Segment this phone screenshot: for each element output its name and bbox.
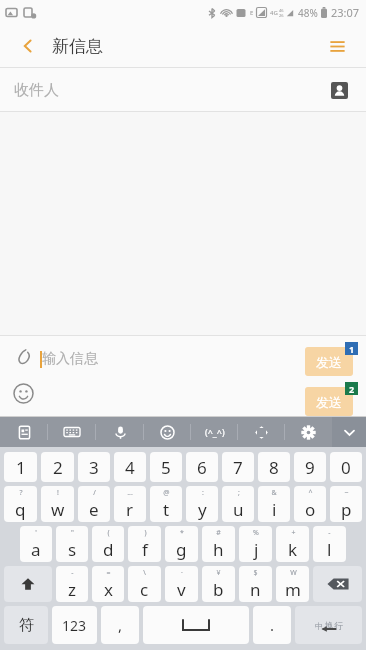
button[interactable]: 发送: [305, 387, 353, 416]
button[interactable]: Voice input: [96, 417, 144, 447]
staticText: ~: [344, 488, 349, 498]
staticText: y: [198, 498, 207, 521]
button[interactable]: *: [165, 526, 198, 562]
button[interactable]: Add contact: [326, 77, 352, 103]
button[interactable]: /: [78, 486, 110, 522]
staticText: m: [285, 578, 301, 601]
button[interactable]: @: [150, 486, 182, 522]
staticText: 6: [197, 456, 207, 479]
staticText: o: [305, 498, 316, 521]
button[interactable]: ~: [330, 486, 362, 522]
button[interactable]: 3: [78, 452, 110, 482]
button[interactable]: Backspace: [313, 566, 362, 602]
button[interactable]: Emoji: [8, 378, 38, 408]
button[interactable]: ?: [4, 486, 37, 522]
button[interactable]: 发送: [305, 347, 353, 376]
staticText: +: [291, 528, 296, 538]
staticText: h: [213, 538, 224, 561]
staticText: q: [15, 498, 26, 521]
button[interactable]: Emoticons: [191, 417, 238, 447]
staticText: (^_^): [205, 426, 225, 438]
button[interactable]: Enter: [295, 606, 362, 644]
staticText: w: [51, 498, 65, 521]
button[interactable]: Attach: [8, 342, 38, 372]
staticText: 发送: [316, 394, 342, 410]
staticText: c: [140, 578, 149, 601]
staticText: 23:07: [331, 5, 360, 20]
button[interactable]: Shift: [4, 566, 52, 602]
button[interactable]: =: [92, 566, 124, 602]
button[interactable]: .: [253, 606, 291, 644]
button[interactable]: 4: [114, 452, 146, 482]
button[interactable]: Emoji: [144, 417, 191, 447]
button[interactable]: 8: [258, 452, 290, 482]
button[interactable]: ": [56, 526, 88, 562]
staticText: 1: [349, 343, 355, 355]
button[interactable]: ;: [222, 486, 254, 522]
button[interactable]: Space: [143, 606, 249, 644]
staticText: ;: [238, 488, 240, 498]
button[interactable]: 123: [52, 606, 97, 644]
button[interactable]: ): [128, 526, 161, 562]
button[interactable]: ¥: [202, 566, 235, 602]
button[interactable]: +: [276, 526, 309, 562]
button[interactable]: \: [128, 566, 161, 602]
staticText: (: [107, 528, 110, 538]
staticText: p: [341, 498, 352, 521]
staticText: 新信息: [52, 36, 103, 57]
staticText: ...: [127, 488, 133, 498]
staticText: l: [327, 538, 332, 561]
button[interactable]: Hide keyboard: [332, 417, 366, 447]
button[interactable]: (: [92, 526, 124, 562]
staticText: 0: [341, 456, 351, 479]
button[interactable]: ': [20, 526, 52, 562]
button[interactable]: -: [313, 526, 346, 562]
button[interactable]: :: [186, 486, 218, 522]
staticText: %: [253, 528, 259, 538]
staticText: 2: [53, 456, 63, 479]
button[interactable]: ^: [294, 486, 326, 522]
button[interactable]: 5: [150, 452, 182, 482]
button[interactable]: ,: [101, 606, 139, 644]
staticText: d: [103, 538, 114, 561]
staticText: =: [106, 568, 111, 578]
staticText: 9: [305, 456, 315, 479]
button[interactable]: ·: [165, 566, 198, 602]
button[interactable]: Keyboard: [48, 417, 96, 447]
button[interactable]: &: [258, 486, 290, 522]
button[interactable]: Settings: [285, 417, 332, 447]
staticText: 4: [125, 456, 135, 479]
staticText: 4G: [270, 9, 278, 17]
button[interactable]: 9: [294, 452, 326, 482]
button[interactable]: 符: [4, 606, 48, 644]
button[interactable]: -: [56, 566, 88, 602]
staticText: t: [163, 498, 170, 521]
button[interactable]: #: [202, 526, 235, 562]
button[interactable]: !: [41, 486, 74, 522]
staticText: -: [71, 568, 74, 578]
button[interactable]: %: [239, 526, 272, 562]
button[interactable]: 6: [186, 452, 218, 482]
staticText: &: [271, 488, 277, 498]
button[interactable]: ...: [114, 486, 146, 522]
staticText: n: [250, 578, 261, 601]
staticText: a: [31, 538, 41, 561]
staticText: u: [233, 498, 244, 521]
staticText: 46 26: [279, 8, 284, 18]
staticText: *: [180, 528, 184, 538]
staticText: 7: [233, 456, 243, 479]
button[interactable]: Back: [14, 32, 42, 60]
staticText: ,: [118, 615, 123, 635]
staticText: 3: [89, 456, 99, 479]
button[interactable]: Clipboard: [0, 417, 48, 447]
button[interactable]: W: [276, 566, 309, 602]
button[interactable]: $: [239, 566, 272, 602]
staticText: z: [68, 578, 76, 601]
button[interactable]: 0: [330, 452, 362, 482]
button[interactable]: 1: [4, 452, 37, 482]
button[interactable]: Move cursor: [238, 417, 285, 447]
button[interactable]: 7: [222, 452, 254, 482]
staticText: 收件人: [14, 81, 59, 100]
button[interactable]: Menu: [322, 31, 352, 61]
button[interactable]: 2: [41, 452, 74, 482]
